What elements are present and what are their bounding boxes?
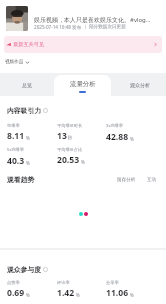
staticText: % <box>130 136 134 142</box>
staticText: 13 <box>57 130 67 142</box>
button[interactable]: 视频作品 <box>5 59 30 65</box>
staticText: 5s完播率 <box>7 147 24 153</box>
staticText: 0.69 <box>7 287 25 299</box>
button[interactable]: 流量分析 <box>54 73 111 96</box>
button[interactable]: 通知 <box>4 36 162 53</box>
staticText: 互动 <box>147 177 157 183</box>
button[interactable]: 总览 <box>12 73 42 96</box>
staticText: % <box>81 159 85 165</box>
staticText: 2025-07-14 10:48 发布 <box>34 24 82 30</box>
staticText: 20.53 <box>57 154 80 166</box>
staticText: 内容吸引力 <box>7 106 41 115</box>
staticText: % <box>76 292 80 298</box>
staticText: 娱乐视频，本人只是喜欢娱乐文化。#vlog… <box>34 16 151 24</box>
staticText: 1.42 <box>57 287 75 299</box>
staticText: 3s完播率 <box>106 123 123 129</box>
staticText: 总览 <box>22 82 32 88</box>
button[interactable]: 留存分析 <box>116 176 137 184</box>
button[interactable]: 互动 <box>146 176 158 184</box>
staticText: 最新互关可见 <box>13 41 45 48</box>
staticText: 部分数据次日更新 <box>89 24 126 30</box>
staticText: 点赞率 <box>7 280 20 285</box>
staticText: % <box>26 160 30 166</box>
staticText: 42.88 <box>106 131 129 143</box>
staticText: 分享率 <box>106 280 119 285</box>
button[interactable]: 观众分析 <box>122 73 158 96</box>
staticText: % <box>26 135 30 141</box>
staticText: 11.06 <box>106 287 129 299</box>
staticText: 观众分析 <box>130 82 150 88</box>
staticText: 平均播放时长 <box>57 123 83 128</box>
staticText: 流量分析 <box>70 80 96 88</box>
staticText: % <box>130 292 134 298</box>
staticText: 平均播放占比 <box>57 147 83 152</box>
staticText: 秒 <box>68 135 73 141</box>
staticText: 40.3 <box>7 155 25 167</box>
staticText: 完播率 <box>7 123 20 128</box>
staticText: 留存分析 <box>117 177 136 183</box>
other: 通知 <box>6 42 11 47</box>
staticText: 评论率 <box>57 280 70 285</box>
button[interactable]: 观众参与度 <box>7 265 48 274</box>
staticText: 视频作品 <box>5 59 24 65</box>
staticText: % <box>26 292 30 298</box>
button[interactable]: 内容吸引力 <box>7 106 48 115</box>
staticText: 8.11 <box>7 130 25 142</box>
staticText: 观看趋势 <box>7 175 35 184</box>
staticText: 观众参与度 <box>7 265 41 274</box>
